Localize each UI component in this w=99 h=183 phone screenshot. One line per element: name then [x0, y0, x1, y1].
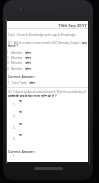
staticText: उत्तर [25, 50, 31, 55]
staticText: प्रश्न [82, 40, 87, 45]
button[interactable]: 19th Sep 2017 [58, 23, 87, 29]
staticText: 1. Total Trade [8, 81, 27, 85]
button[interactable]: 2. Member [7, 55, 31, 60]
staticText: देश में ? [8, 43, 19, 48]
staticText: उत्तर [29, 80, 35, 85]
staticText: उत्तर [25, 55, 31, 60]
staticText: 19th Sep 2017 [58, 23, 87, 29]
staticText: क [19, 132, 22, 137]
staticText: क [19, 98, 22, 103]
staticText: 2. [13, 114, 16, 118]
button[interactable]: क [19, 132, 22, 137]
button[interactable]: क [19, 98, 22, 103]
staticText: भारत के सबसे बडा राज्य कौन सा है ? [8, 93, 57, 98]
staticText: 3. Member [7, 61, 23, 65]
staticText: क [19, 109, 22, 114]
staticText: Correct Answer : [8, 149, 36, 154]
staticText: Q2. Filipina spillpack aties aim pani? B… [8, 90, 89, 98]
staticText: 1. [13, 154, 16, 158]
staticText: उत्तर [25, 66, 31, 71]
staticText: Topic : General Knowledge and Logical Kn… [8, 33, 76, 37]
staticText: 3. [13, 126, 16, 130]
button[interactable]: 4. Member [7, 66, 31, 71]
staticText: 4. Member [7, 67, 23, 71]
button[interactable]: 3. Member [7, 60, 31, 65]
button[interactable]: 1. Member [7, 50, 31, 55]
staticText: क [19, 121, 22, 126]
staticText: 1. Member [7, 51, 23, 55]
staticText: 4. [13, 137, 16, 141]
staticText: 2. Member [7, 56, 23, 60]
button[interactable]: क [19, 121, 22, 126]
staticText: उत्तर [25, 60, 31, 65]
staticText: Correct Answer : [8, 74, 36, 79]
staticText: 1. [13, 103, 16, 107]
button[interactable]: क [19, 109, 22, 114]
staticText: Q1. Which october state mantle 24/7 Bomb… [8, 41, 82, 45]
